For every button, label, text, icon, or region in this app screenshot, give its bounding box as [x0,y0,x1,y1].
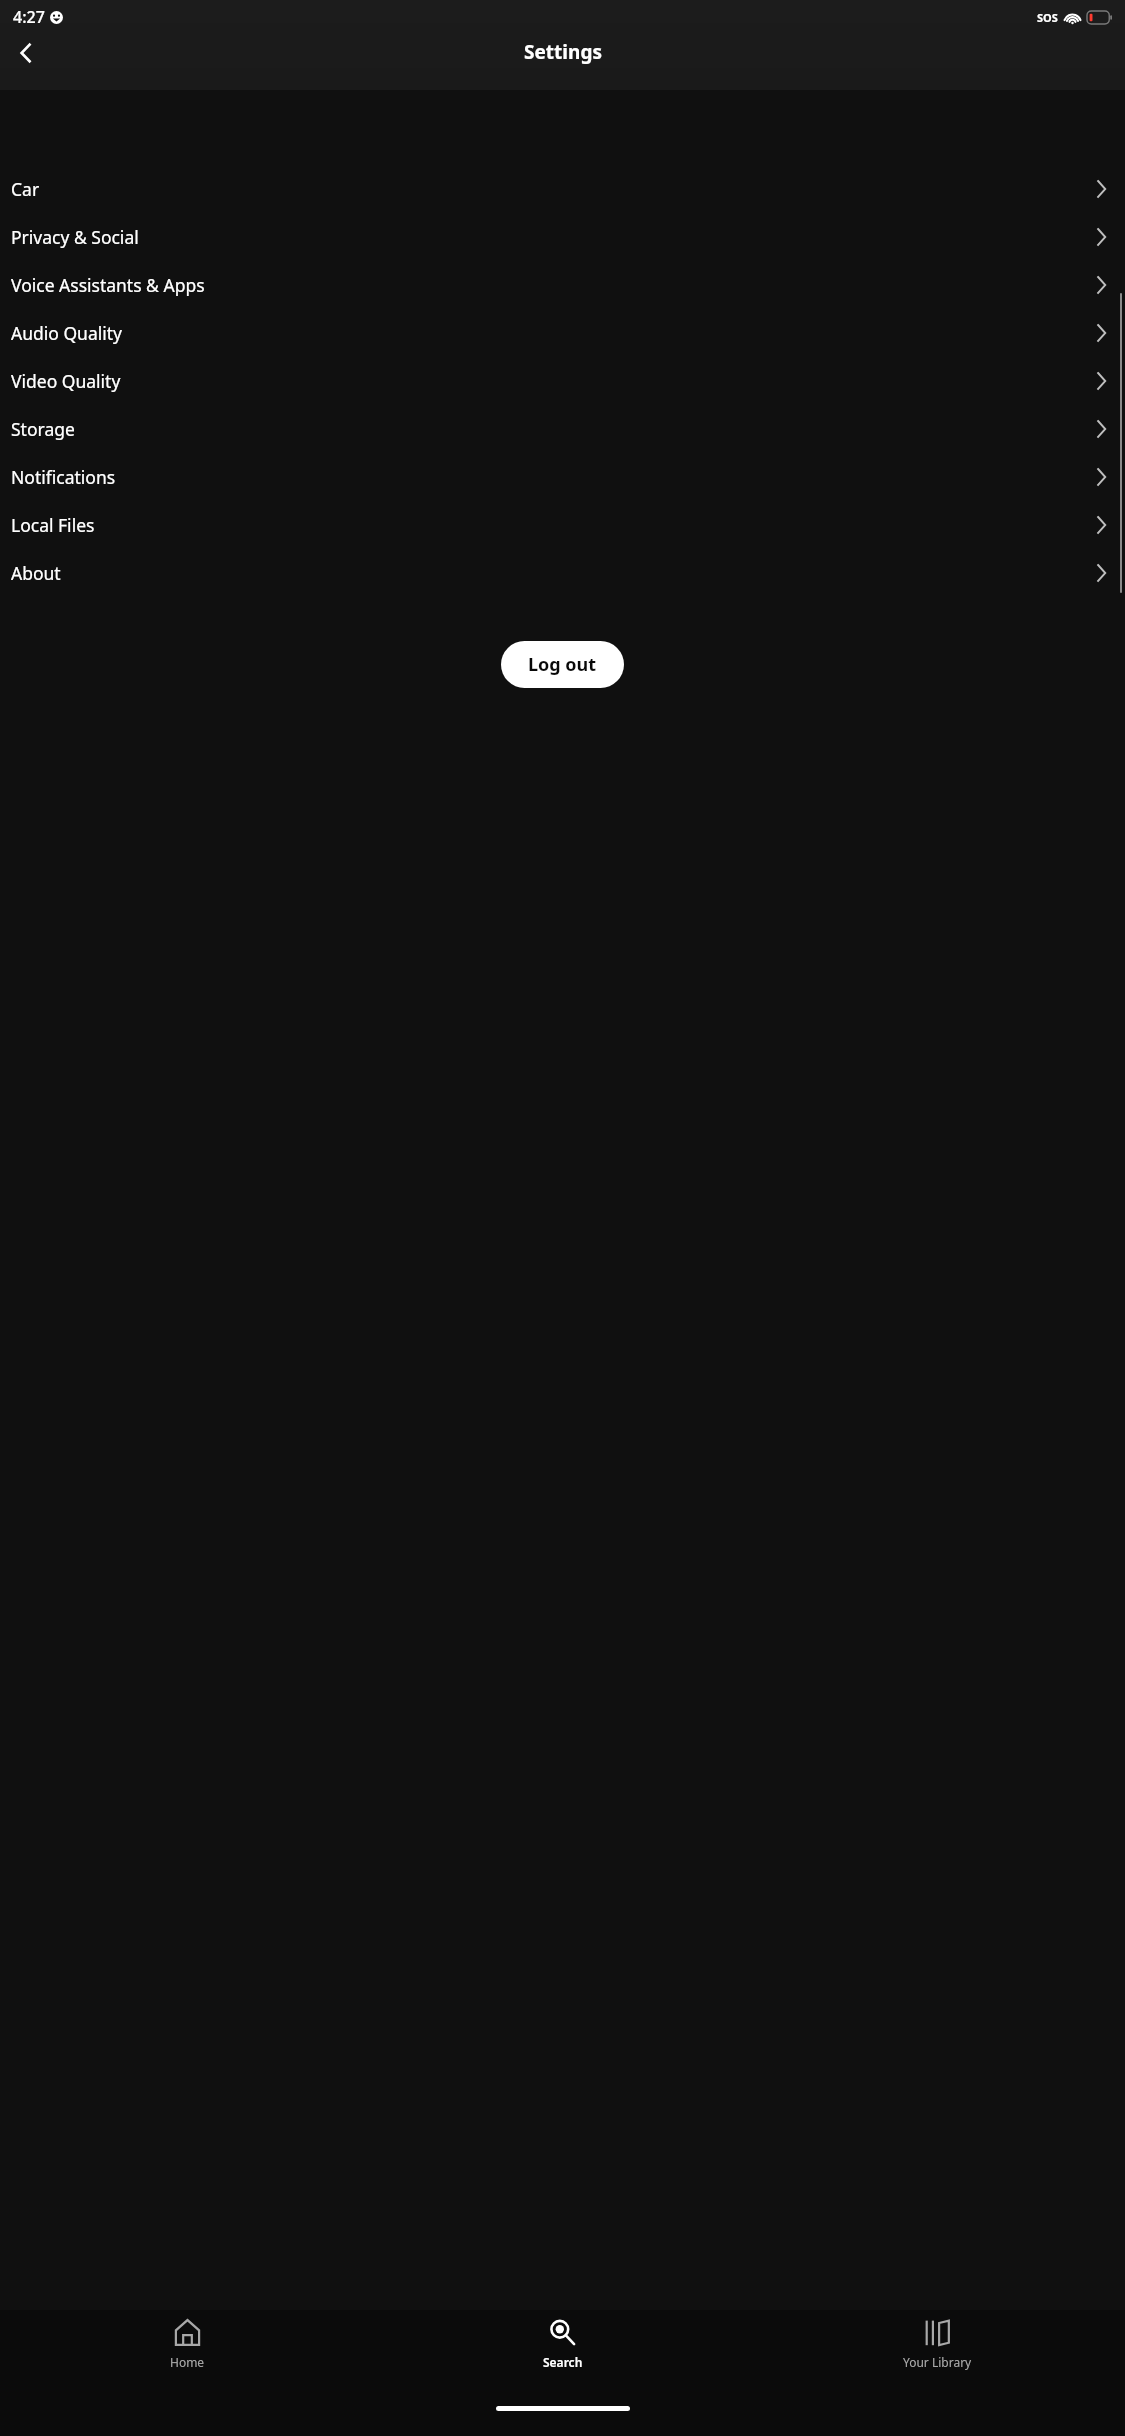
staticText: Privacy & Social [11,225,139,249]
button[interactable]: Audio Quality [0,309,1125,357]
button[interactable]: Home [0,2310,375,2402]
button[interactable]: Privacy & Social [0,213,1125,261]
staticText: Audio Quality [11,321,122,345]
button[interactable]: Your Library [750,2310,1125,2402]
staticText: 4:27 [13,6,45,28]
staticText: Storage [11,417,75,441]
staticText: Notifications [11,465,116,489]
button[interactable]: Voice Assistants & Apps [0,261,1125,309]
button[interactable]: Local Files [0,501,1125,549]
button[interactable]: Back [4,31,48,75]
staticText: About [11,561,61,585]
button[interactable]: Storage [0,405,1125,453]
staticText: Log out [528,652,597,677]
staticText: Video Quality [11,369,121,393]
button[interactable]: Video Quality [0,357,1125,405]
staticText: Local Files [11,513,95,537]
staticText: Car [11,177,40,201]
button[interactable]: Car [0,165,1125,213]
staticText: Home [170,2354,205,2370]
staticText: SOS [1037,10,1058,25]
staticText: Your Library [903,2354,972,2370]
button[interactable]: Log out [501,641,624,688]
staticText: Search [543,2354,583,2370]
staticText: Voice Assistants & Apps [11,273,205,297]
staticText: Settings [524,39,602,65]
button[interactable]: Search [375,2310,750,2402]
button[interactable]: Notifications [0,453,1125,501]
button[interactable]: About [0,549,1125,597]
